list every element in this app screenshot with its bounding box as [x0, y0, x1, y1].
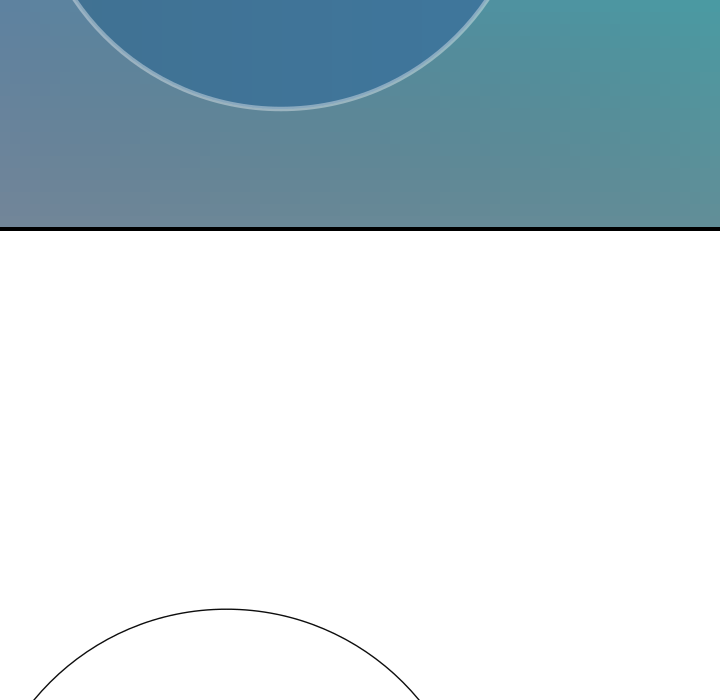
button[interactable]: Dial — [0, 609, 476, 700]
button[interactable]: Artwork — [0, 0, 720, 227]
